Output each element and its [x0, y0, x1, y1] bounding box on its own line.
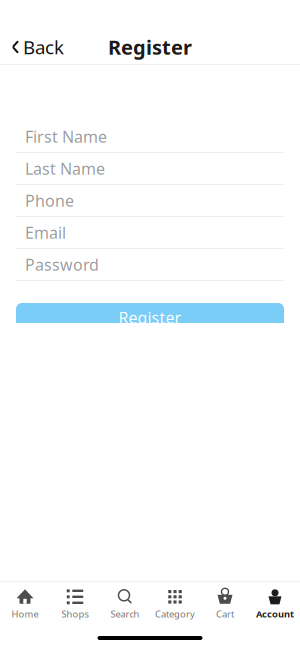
- button[interactable]: Back: [3, 28, 72, 66]
- staticText: Account: [256, 608, 294, 620]
- button[interactable]: Last Name: [16, 153, 284, 185]
- button[interactable]: First Name: [16, 121, 284, 153]
- staticText: Shops: [61, 608, 88, 620]
- button[interactable]: Password: [16, 249, 284, 281]
- button[interactable]: Search: [100, 582, 150, 627]
- staticText: Cart: [216, 608, 234, 620]
- button[interactable]: Phone: [16, 185, 284, 217]
- button[interactable]: Register: [16, 303, 284, 332]
- button[interactable]: Shops: [50, 582, 100, 627]
- button[interactable]: Account: [250, 582, 300, 627]
- staticText: Email: [25, 222, 66, 243]
- staticText: Category: [155, 608, 195, 620]
- button[interactable]: Category: [150, 582, 200, 627]
- staticText: Back: [23, 35, 64, 59]
- button[interactable]: Cart: [200, 582, 250, 627]
- staticText: Phone: [25, 190, 74, 211]
- staticText: Register: [108, 34, 192, 60]
- staticText: Search: [110, 608, 139, 620]
- staticText: Last Name: [25, 158, 105, 179]
- staticText: First Name: [25, 126, 107, 147]
- staticText: Password: [25, 254, 99, 275]
- button[interactable]: Home: [0, 582, 50, 627]
- staticText: Register: [118, 307, 181, 328]
- button[interactable]: Email: [16, 217, 284, 249]
- staticText: Home: [11, 608, 38, 620]
